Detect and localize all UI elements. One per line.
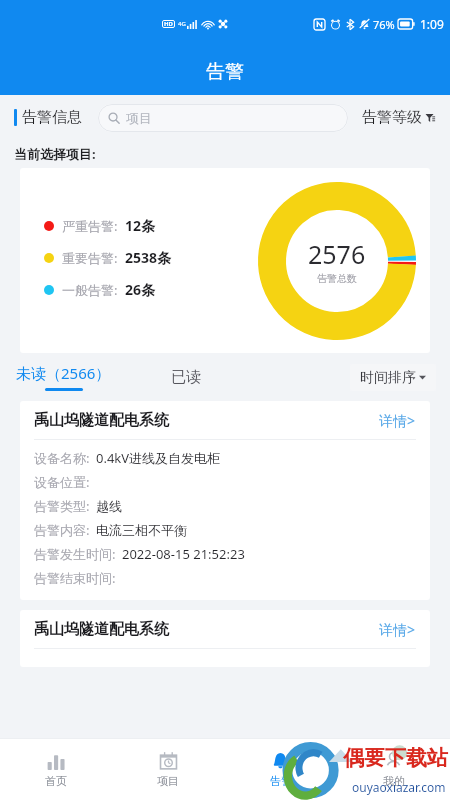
staticText: 电流三相不平衡 [96,522,187,538]
staticText: 告警内容: [34,521,90,539]
button[interactable]: 详情> [379,620,416,639]
staticText: 已读 [171,368,201,387]
staticText: 偶要下载站 [343,745,448,771]
button[interactable]: 禹山坞隧道配电系统 [20,610,430,667]
staticText: 重要告警: [62,249,118,267]
button[interactable]: 告警信息 [14,108,82,127]
staticText: 一般告警: [62,281,118,299]
button[interactable]: 详情> [379,411,416,430]
staticText: 未读（2566） [16,363,111,383]
staticText: 76% [373,17,395,32]
staticText: 告警 [206,60,244,84]
staticText: 2022-08-15 21:52:23 [122,545,245,563]
staticText: 告警发生时间: [34,545,116,563]
button[interactable]: 时间排序 [350,364,436,391]
staticText: HD [164,20,173,28]
button[interactable]: 告警等级 [362,108,436,127]
staticText: 项目 [126,110,152,126]
staticText: 26条 [125,280,156,299]
button[interactable]: 告警 [224,738,337,800]
staticText: ouyaoxiazar.com [352,779,446,795]
staticText: 禹山坞隧道配电系统 [34,620,169,639]
staticText: 禹山坞隧道配电系统 [34,411,169,430]
staticText: 告警总数 [317,272,357,285]
button[interactable]: 禹山坞隧道配电系统 [20,401,430,600]
staticText: 设备名称: [34,449,90,467]
staticText: 当前选择项目: [14,145,96,163]
staticText: 时间排序 [360,369,416,387]
staticText: 我的 [383,774,405,788]
staticText: 12条 [125,216,156,235]
staticText: 告警结束时间: [34,569,116,587]
staticText: 2576 [308,237,366,271]
staticText: 项目 [157,774,179,788]
staticText: 1:09 [420,16,444,32]
staticText: 0.4kV进线及自发电柜 [96,449,221,467]
staticText: 告警 [270,774,292,788]
staticText: 告警信息 [22,108,82,127]
staticText: 告警等级 [362,108,422,127]
button[interactable]: 首页 [0,738,112,800]
staticText: 设备位置: [34,473,90,491]
button[interactable]: 项目 [98,104,348,132]
staticText: 越线 [96,498,122,514]
button[interactable]: 我的 [337,738,450,800]
staticText: 4G [178,20,186,28]
staticText: 首页 [45,774,67,788]
button[interactable]: 项目 [112,738,224,800]
staticText: 2538条 [125,248,172,267]
button[interactable]: 已读 [167,364,205,391]
button[interactable]: 未读（2566） [14,363,113,391]
staticText: 告警类型: [34,497,90,515]
staticText: 严重告警: [62,217,118,235]
